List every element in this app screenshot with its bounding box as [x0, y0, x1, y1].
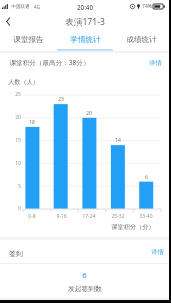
staticText: 学情统计: [70, 35, 101, 45]
staticText: 课堂报告: [13, 35, 44, 45]
staticText: 4G: [34, 4, 40, 10]
staticText: 25-32: [111, 213, 125, 220]
staticText: 0-8: [28, 213, 36, 220]
staticText: 6: [145, 174, 148, 181]
staticText: 6: [82, 270, 87, 280]
staticText: 9-16: [56, 213, 67, 220]
button[interactable]: 成绩统计: [113, 30, 169, 51]
button[interactable]: 课堂报告: [0, 30, 57, 51]
staticText: 14: [115, 137, 121, 144]
staticText: 0: [18, 205, 21, 212]
staticText: 10: [15, 160, 21, 167]
staticText: 18: [29, 119, 35, 126]
staticText: 20: [86, 110, 92, 117]
staticText: 发起签到数: [68, 284, 102, 293]
button[interactable]: Back: [0, 13, 17, 30]
staticText: 5: [18, 183, 21, 190]
staticText: 详情: [151, 248, 164, 256]
staticText: 中国联通: [11, 4, 30, 10]
staticText: 17-24: [82, 213, 96, 220]
button[interactable]: 详情: [149, 59, 162, 67]
staticText: 课堂积分（最高分：38分）: [9, 58, 90, 67]
staticText: 详情: [149, 59, 162, 67]
staticText: 20:40: [77, 3, 93, 11]
button[interactable]: 学情统计: [57, 30, 113, 51]
staticText: 签到: [9, 249, 23, 258]
staticText: 20: [15, 114, 21, 121]
staticText: 课堂积分（分）: [111, 223, 155, 231]
staticText: 74%: [142, 3, 152, 10]
button[interactable]: 详情: [151, 248, 164, 256]
staticText: 23: [58, 96, 64, 103]
staticText: 25: [15, 91, 21, 98]
staticText: 33-40: [139, 213, 153, 220]
button[interactable]: 签到: [9, 249, 23, 258]
staticText: 15: [15, 137, 21, 144]
staticText: 表演171-3: [65, 16, 105, 28]
staticText: 人数（人）: [8, 78, 39, 86]
staticText: 成绩统计: [126, 35, 157, 45]
